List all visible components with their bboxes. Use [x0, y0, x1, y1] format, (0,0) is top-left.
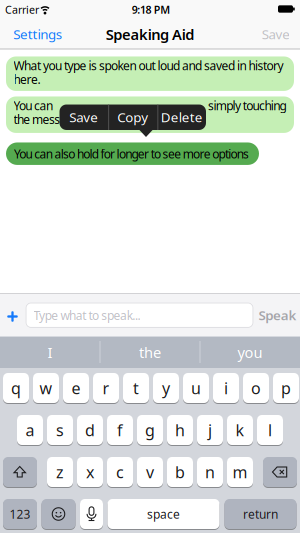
staticText: the [139, 342, 161, 362]
button[interactable]: x [77, 457, 103, 487]
staticText: k [235, 419, 244, 441]
staticText: l [268, 419, 272, 441]
staticText: w [39, 377, 52, 399]
staticText: i [224, 377, 228, 399]
button[interactable]: Save [260, 24, 292, 44]
button[interactable]: i [213, 373, 239, 403]
staticText: q [11, 377, 21, 399]
button[interactable]: Save [60, 104, 108, 130]
staticText: Save [262, 25, 290, 43]
button[interactable]: b [167, 457, 193, 487]
button[interactable]: d [77, 415, 103, 445]
staticText: n [205, 461, 215, 483]
staticText: 9:18 PM [132, 3, 170, 17]
staticText: 123 [9, 506, 30, 522]
staticText: return [243, 506, 278, 522]
button[interactable]: Type what to speak [25, 302, 253, 328]
staticText: Type what to speak... [33, 307, 140, 323]
staticText: y [162, 377, 170, 399]
staticText: e [71, 377, 80, 399]
staticText: I [47, 342, 52, 362]
button[interactable]: k [227, 415, 253, 445]
button[interactable]: you [201, 336, 299, 368]
staticText: Carrier [5, 3, 39, 17]
button[interactable]: z [47, 457, 73, 487]
staticText: b [175, 461, 185, 483]
button[interactable]: return [224, 499, 296, 529]
staticText: You can also hold for longer to see more… [14, 146, 249, 162]
button[interactable]: s [47, 415, 73, 445]
button[interactable]: Delete [263, 457, 297, 487]
button[interactable]: v [137, 457, 163, 487]
staticText: a [25, 419, 34, 441]
staticText: m [232, 461, 247, 483]
staticText: What you type is spoken out loud and sav… [13, 57, 283, 73]
staticText: Speak [259, 306, 296, 324]
button[interactable]: Add [4, 308, 20, 324]
button[interactable]: Copy [109, 104, 157, 130]
button[interactable]: r [93, 373, 119, 403]
staticText: r [102, 377, 109, 399]
button[interactable] [6, 96, 294, 133]
button[interactable]: Shift [3, 457, 37, 487]
button[interactable]: space [107, 499, 219, 529]
staticText: o [251, 377, 261, 399]
staticText: you [237, 342, 262, 362]
staticText: simply touching [208, 97, 287, 113]
staticText: You can [13, 97, 53, 113]
button[interactable]: q [3, 373, 29, 403]
staticText: Save [69, 108, 98, 126]
button[interactable]: a [17, 415, 43, 445]
staticText: d [85, 419, 95, 441]
button[interactable]: l [257, 415, 283, 445]
button[interactable]: I [1, 336, 99, 368]
staticText: Delete [161, 108, 203, 126]
staticText: g [145, 419, 155, 441]
button[interactable] [6, 142, 259, 165]
button[interactable]: 123 [3, 499, 37, 529]
staticText: Settings [13, 25, 62, 43]
button[interactable]: e [63, 373, 89, 403]
staticText: Speaking Aid [106, 24, 194, 44]
staticText: p [281, 377, 291, 399]
button[interactable]: m [227, 457, 253, 487]
staticText: s [56, 419, 64, 441]
staticText: the mess [13, 111, 60, 127]
button[interactable]: n [197, 457, 223, 487]
button[interactable]: Settings [11, 24, 63, 44]
button[interactable]: j [197, 415, 223, 445]
staticText: z [56, 461, 64, 483]
button[interactable]: Speak [256, 304, 298, 326]
button[interactable]: w [33, 373, 59, 403]
staticText: u [191, 377, 201, 399]
staticText: space [147, 506, 180, 522]
staticText: here. [13, 71, 40, 87]
staticText: j [208, 419, 212, 441]
button[interactable]: Emoji [41, 499, 75, 529]
button[interactable]: g [137, 415, 163, 445]
button[interactable]: t [123, 373, 149, 403]
button[interactable] [6, 56, 294, 91]
staticText: h [175, 419, 185, 441]
staticText: t [133, 377, 139, 399]
staticText: Copy [117, 108, 148, 126]
button[interactable]: the [101, 336, 199, 368]
button[interactable]: h [167, 415, 193, 445]
staticText: v [146, 461, 154, 483]
button[interactable]: c [107, 457, 133, 487]
button[interactable]: p [273, 373, 299, 403]
staticText: f [117, 419, 123, 441]
button[interactable]: Delete [158, 104, 206, 130]
staticText: x [86, 461, 94, 483]
button[interactable]: o [243, 373, 269, 403]
staticText: c [116, 461, 124, 483]
button[interactable]: f [107, 415, 133, 445]
button[interactable]: y [153, 373, 179, 403]
button[interactable]: Dictate [80, 499, 103, 529]
button[interactable]: u [183, 373, 209, 403]
